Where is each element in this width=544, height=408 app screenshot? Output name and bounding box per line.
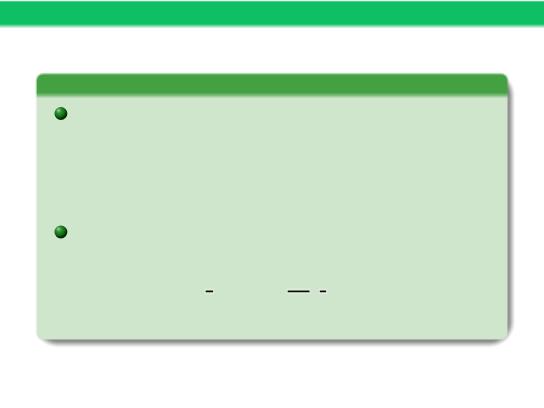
button[interactable]: App bar	[0, 0, 544, 28]
button[interactable]: Details card	[36, 73, 507, 339]
button[interactable]: List item 2	[36, 216, 507, 334]
button[interactable]: List item 1	[36, 98, 507, 216]
button[interactable]: Card title	[36, 73, 507, 98]
